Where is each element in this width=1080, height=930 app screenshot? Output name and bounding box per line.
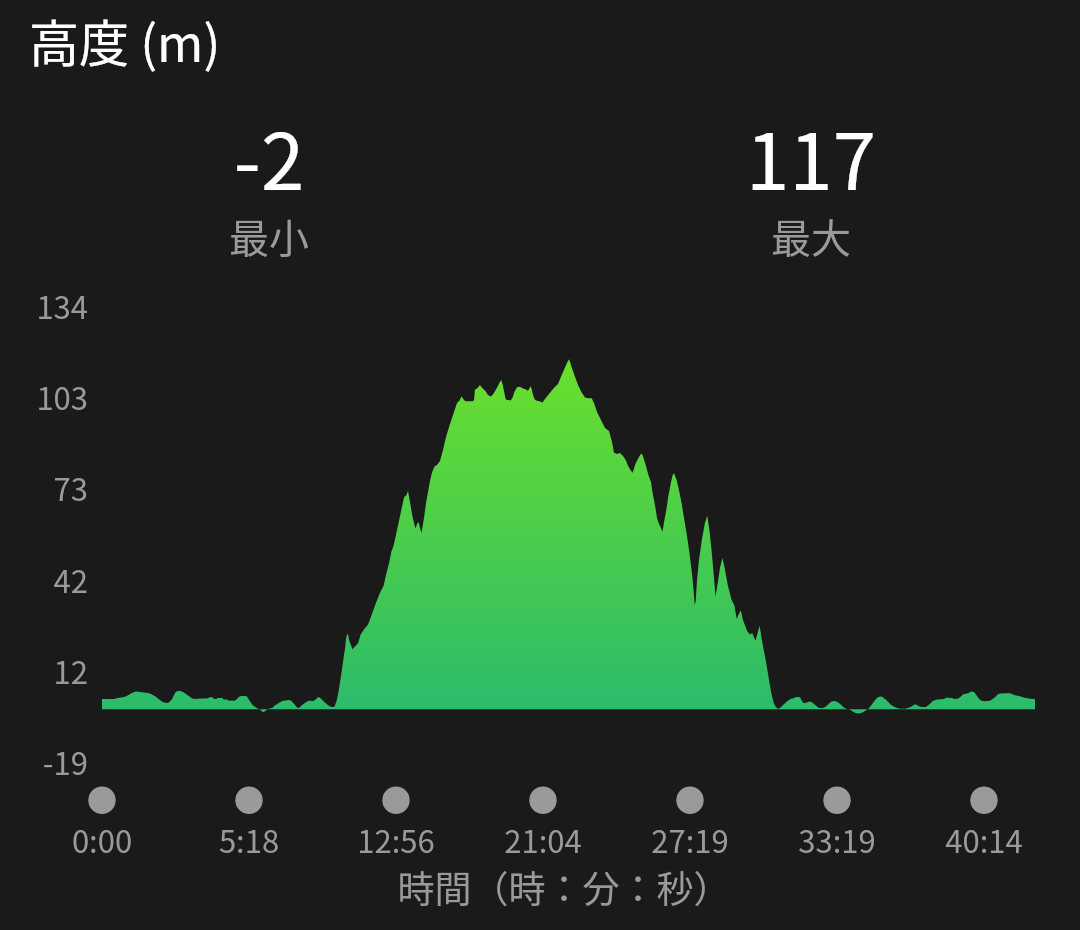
button[interactable]: Elevation graph (96, 288, 1041, 718)
staticText: -19 (0, 739, 88, 784)
staticText: 103 (0, 374, 88, 419)
staticText: 5:18 (129, 817, 369, 862)
staticText: 時間（時：分：秒） (264, 860, 864, 914)
button[interactable]: -2 (69, 100, 469, 266)
staticText: 最大 (611, 207, 1011, 265)
staticText: 27:19 (570, 817, 810, 862)
staticText: 21:04 (423, 817, 663, 862)
staticText: 12:56 (276, 817, 516, 862)
staticText: 0:00 (0, 817, 222, 862)
staticText: 12 (0, 648, 88, 693)
staticText: 33:19 (717, 817, 957, 862)
staticText: 最小 (69, 207, 469, 265)
staticText: 117 (611, 100, 1011, 213)
staticText: 73 (0, 465, 88, 510)
staticText: 高度 (m) (29, 4, 221, 76)
staticText: 134 (0, 283, 88, 328)
staticText: 42 (0, 557, 88, 602)
staticText: -2 (69, 100, 469, 213)
button[interactable]: 117 (611, 100, 1011, 266)
staticText: 40:14 (864, 817, 1080, 862)
